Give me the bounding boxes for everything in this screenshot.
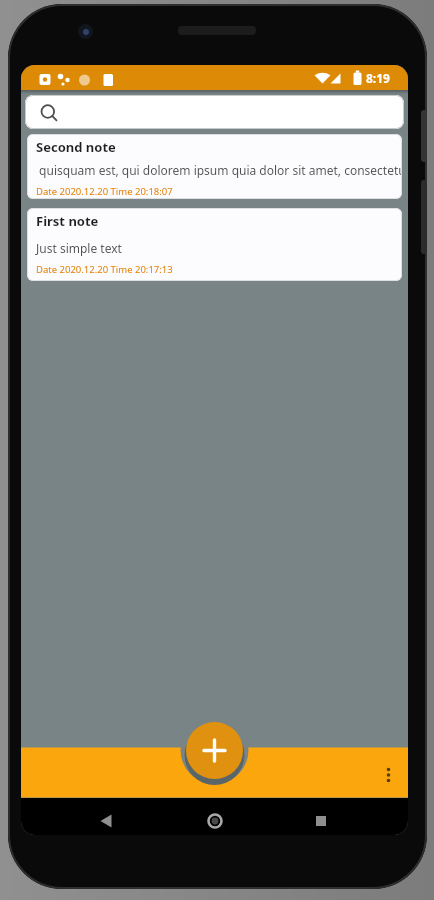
staticText: First note [36, 212, 99, 230]
staticText: 8:19 [366, 70, 390, 86]
button[interactable] [201, 807, 229, 835]
button[interactable] [25, 95, 404, 129]
staticText: Date 2020.12.20 Time 20:17:13 [36, 263, 173, 276]
button[interactable] [92, 807, 120, 835]
button[interactable]: First note [27, 208, 402, 281]
staticText: Second note [36, 138, 116, 156]
staticText: Date 2020.12.20 Time 20:18:07 [36, 185, 173, 198]
button[interactable]: Second note [27, 134, 402, 199]
staticText: Just simple text [36, 240, 122, 256]
button[interactable] [186, 722, 243, 779]
staticText: quisquam est, qui dolorem ipsum quia dol… [36, 162, 402, 178]
button[interactable] [379, 761, 399, 789]
button[interactable] [307, 807, 335, 835]
